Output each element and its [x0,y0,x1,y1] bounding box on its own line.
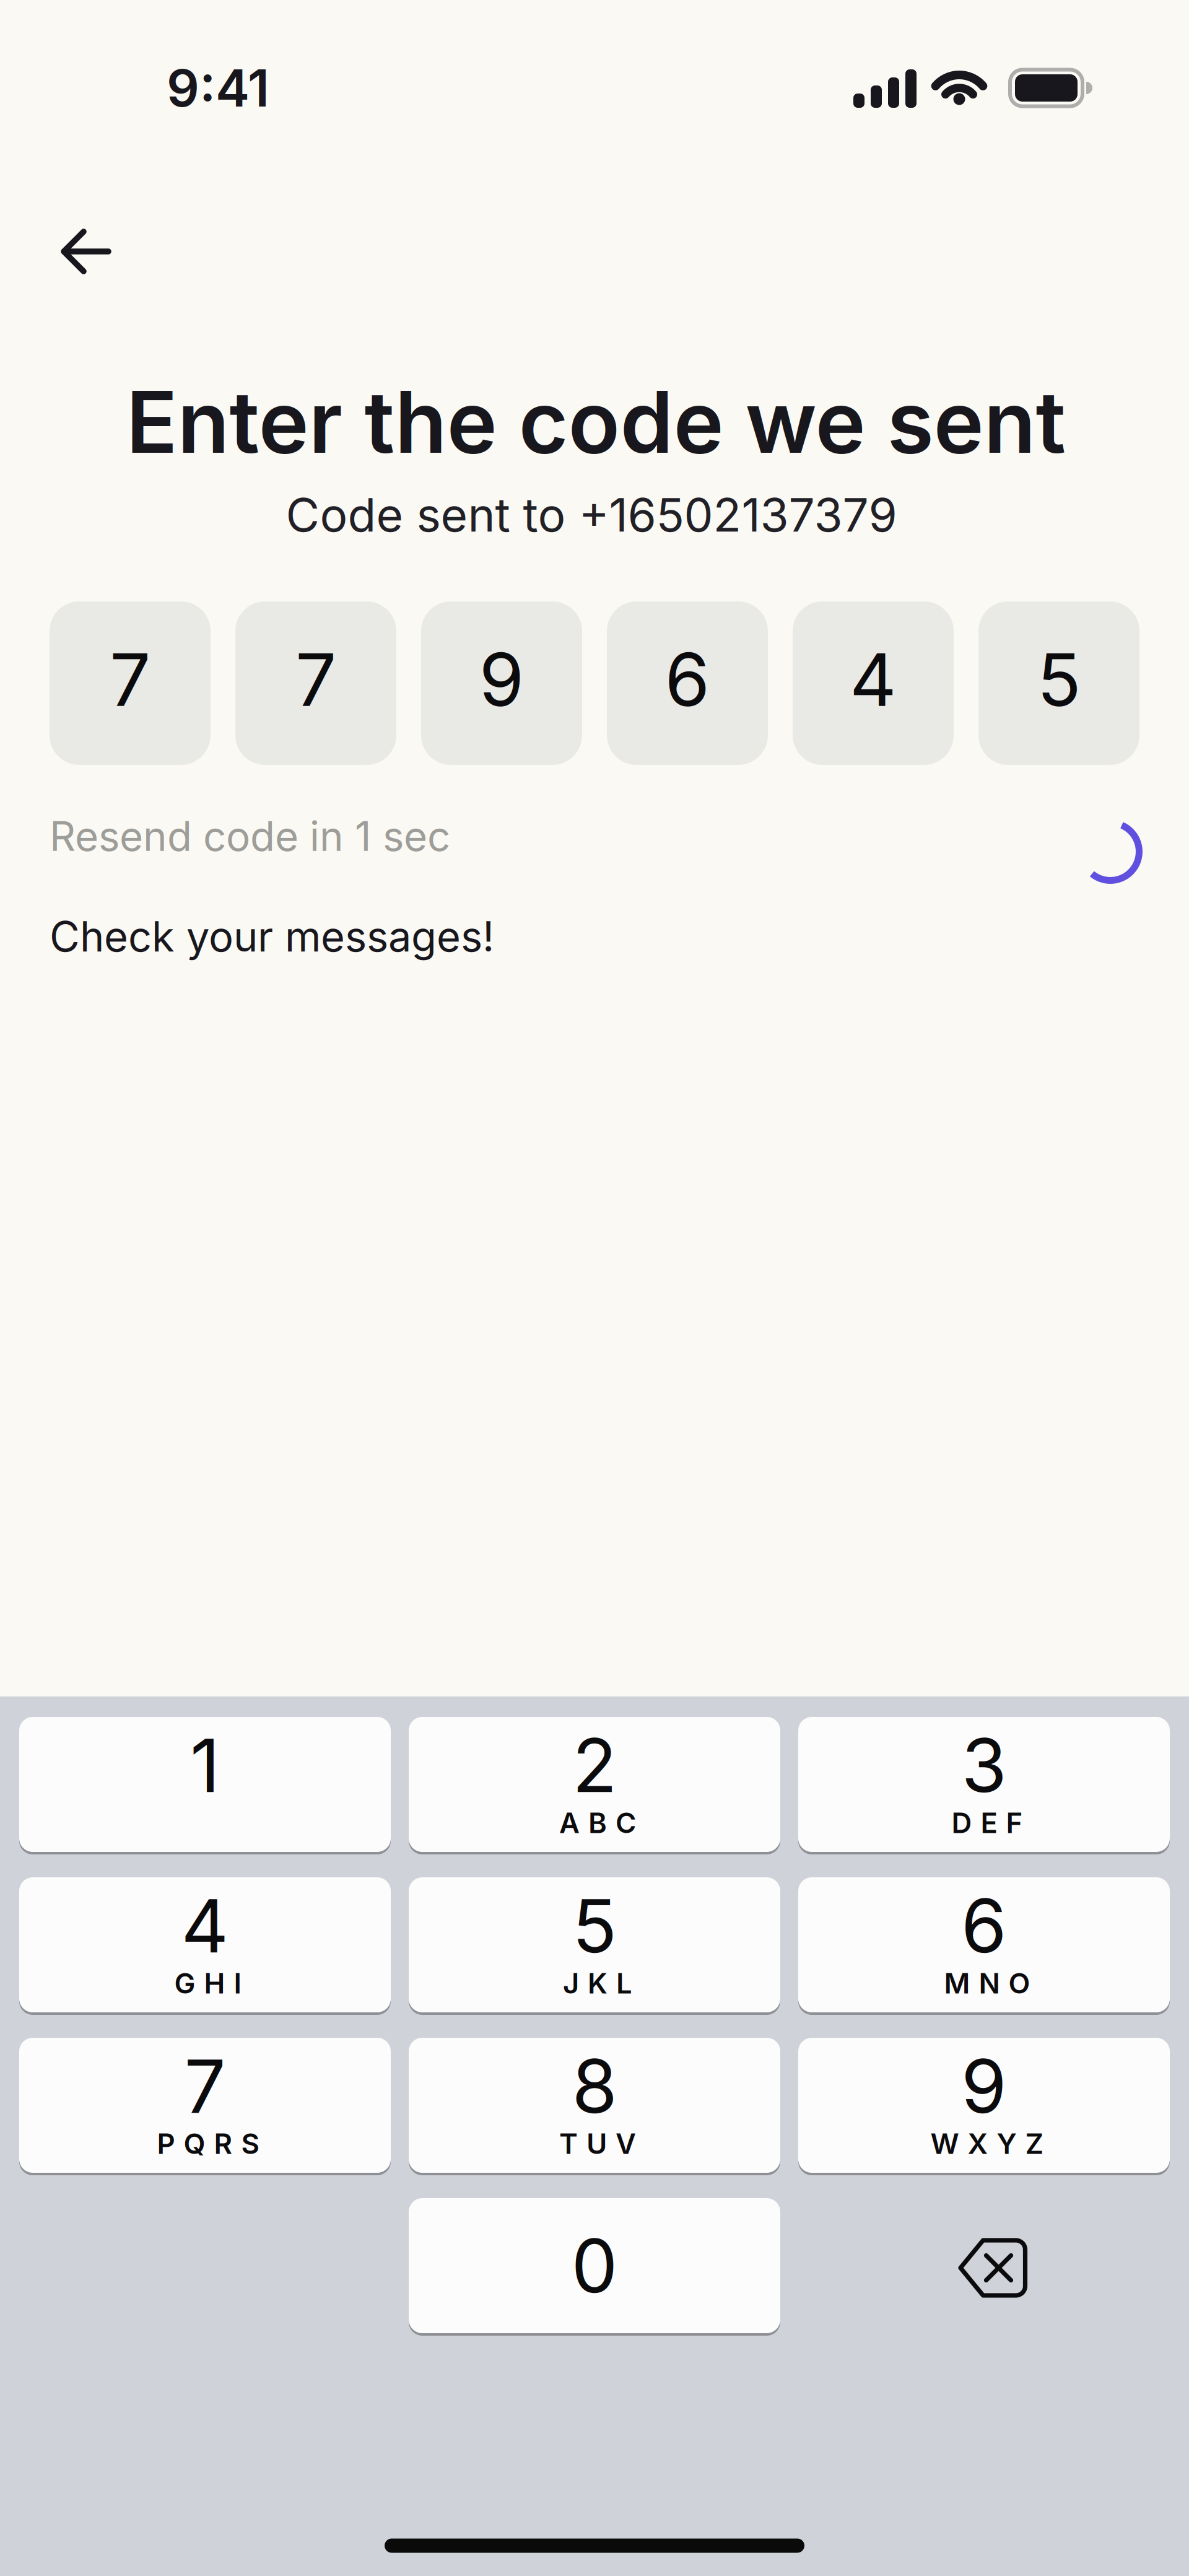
staticText: 2 [572,1721,617,1810]
staticText: 7 [110,635,150,723]
staticText: 4 [181,1881,229,1970]
button[interactable]: 3 [798,1717,1170,1852]
staticText: 3 [961,1721,1007,1810]
staticText: 5 [572,1881,617,1970]
button[interactable]: 6 [798,1877,1170,2012]
staticText: 6 [665,635,710,723]
staticText: 9 [961,2042,1007,2131]
staticText: 9 [479,635,524,723]
staticText: 6 [961,1881,1007,1970]
staticText: Check your messages! [50,912,494,962]
staticText: ABC [559,1806,636,1840]
staticText: 5 [1037,635,1081,723]
staticText: JKL [563,1966,632,2000]
staticText: Code sent to +16502137379 [286,487,897,543]
staticText: 7 [184,2042,226,2131]
staticText: 0 [571,2221,618,2310]
staticText: 8 [572,2042,617,2131]
staticText: 9:41 [167,57,269,119]
button[interactable]: Back [60,229,112,274]
button[interactable]: 5 [409,1877,780,2012]
button[interactable]: 2 [409,1717,780,1852]
button[interactable]: 7 [19,2038,391,2173]
staticText: 7 [295,635,336,723]
staticText: 4 [850,635,897,723]
staticText: 1 [190,1721,220,1810]
staticText: WXYZ [930,2127,1044,2161]
button[interactable]: 0 [409,2198,780,2333]
staticText: GHI [174,1966,242,2000]
button[interactable]: 9 [798,2038,1170,2173]
button[interactable]: 8 [409,2038,780,2173]
button[interactable]: 1 [19,1717,391,1852]
staticText: Enter the code we sent [126,370,1065,473]
button[interactable]: 4 [19,1877,391,2012]
staticText: Resend code in 1 sec [50,812,450,861]
staticText: TUV [559,2127,636,2161]
staticText: PQRS [157,2127,259,2161]
staticText: DEF [952,1806,1023,1840]
staticText: MNO [944,1966,1030,2000]
button[interactable]: Delete [958,2238,1028,2298]
